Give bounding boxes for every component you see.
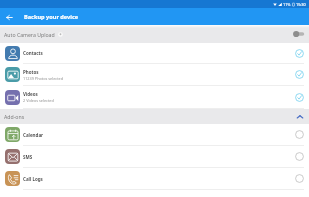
button[interactable]: SMS bbox=[0, 146, 309, 167]
staticText: Backup your device bbox=[24, 13, 79, 21]
staticText: Call Logs bbox=[23, 176, 43, 182]
staticText: 11% bbox=[283, 2, 291, 7]
staticText: Contacts bbox=[23, 50, 43, 56]
button[interactable]: Photos bbox=[0, 64, 309, 85]
staticText: Videos bbox=[23, 91, 38, 97]
staticText: Photos bbox=[23, 69, 39, 75]
button[interactable]: Contacts bbox=[0, 43, 309, 63]
staticText: Add-ons bbox=[4, 113, 25, 120]
button[interactable]: Videos bbox=[0, 86, 309, 108]
button[interactable]: Calendar bbox=[0, 124, 309, 145]
staticText: Calendar bbox=[23, 132, 44, 138]
button[interactable]: Call Logs bbox=[0, 168, 309, 189]
staticText: SMS bbox=[23, 154, 33, 160]
staticText: 15:30 bbox=[296, 2, 306, 7]
button[interactable]: Back bbox=[1, 9, 17, 25]
staticText: 2 Videos selected bbox=[23, 98, 54, 103]
button[interactable]: Auto camera upload switch bbox=[292, 30, 305, 38]
staticText: 11239 Photos selected bbox=[23, 76, 64, 81]
staticText: Auto Camera Upload bbox=[4, 31, 55, 38]
button[interactable]: Collapse add-ons bbox=[294, 111, 305, 122]
